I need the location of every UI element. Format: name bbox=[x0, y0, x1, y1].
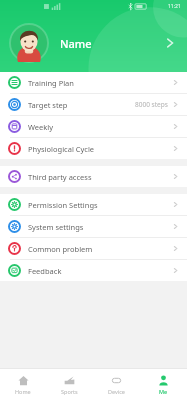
other: Profile photo bbox=[10, 24, 48, 62]
button[interactable]: Me bbox=[140, 369, 187, 400]
staticText: Common problem bbox=[28, 244, 93, 254]
button[interactable]: Common problem bbox=[0, 238, 187, 259]
staticText: System settings bbox=[28, 222, 84, 232]
staticText: Device bbox=[108, 388, 125, 395]
staticText: Me bbox=[159, 388, 168, 395]
button[interactable]: Third party access bbox=[0, 166, 187, 187]
button[interactable]: Profile photo bbox=[0, 14, 187, 72]
button[interactable]: Permission Settings bbox=[0, 194, 187, 215]
staticText: Feedback bbox=[28, 266, 62, 276]
staticText: Target step bbox=[28, 100, 68, 110]
staticText: Sports bbox=[61, 388, 78, 395]
button[interactable]: Physiological Cycle bbox=[0, 138, 187, 159]
staticText: Training Plan bbox=[28, 78, 74, 88]
button[interactable]: Device bbox=[93, 369, 140, 400]
staticText: 8000 steps bbox=[135, 100, 168, 109]
staticText: Third party access bbox=[28, 172, 92, 182]
button[interactable]: Target step bbox=[0, 94, 187, 115]
button[interactable]: Feedback bbox=[0, 260, 187, 281]
staticText: Home bbox=[15, 388, 31, 395]
button[interactable]: Home bbox=[0, 369, 46, 400]
button[interactable]: Training Plan bbox=[0, 72, 187, 93]
button[interactable]: Sports bbox=[46, 369, 93, 400]
button[interactable]: System settings bbox=[0, 216, 187, 237]
staticText: Permission Settings bbox=[28, 200, 98, 210]
staticText: Name bbox=[60, 36, 92, 51]
staticText: Physiological Cycle bbox=[28, 144, 95, 154]
staticText: 11:21 bbox=[168, 3, 181, 10]
staticText: Weekly bbox=[28, 122, 54, 132]
button[interactable]: Weekly bbox=[0, 116, 187, 137]
